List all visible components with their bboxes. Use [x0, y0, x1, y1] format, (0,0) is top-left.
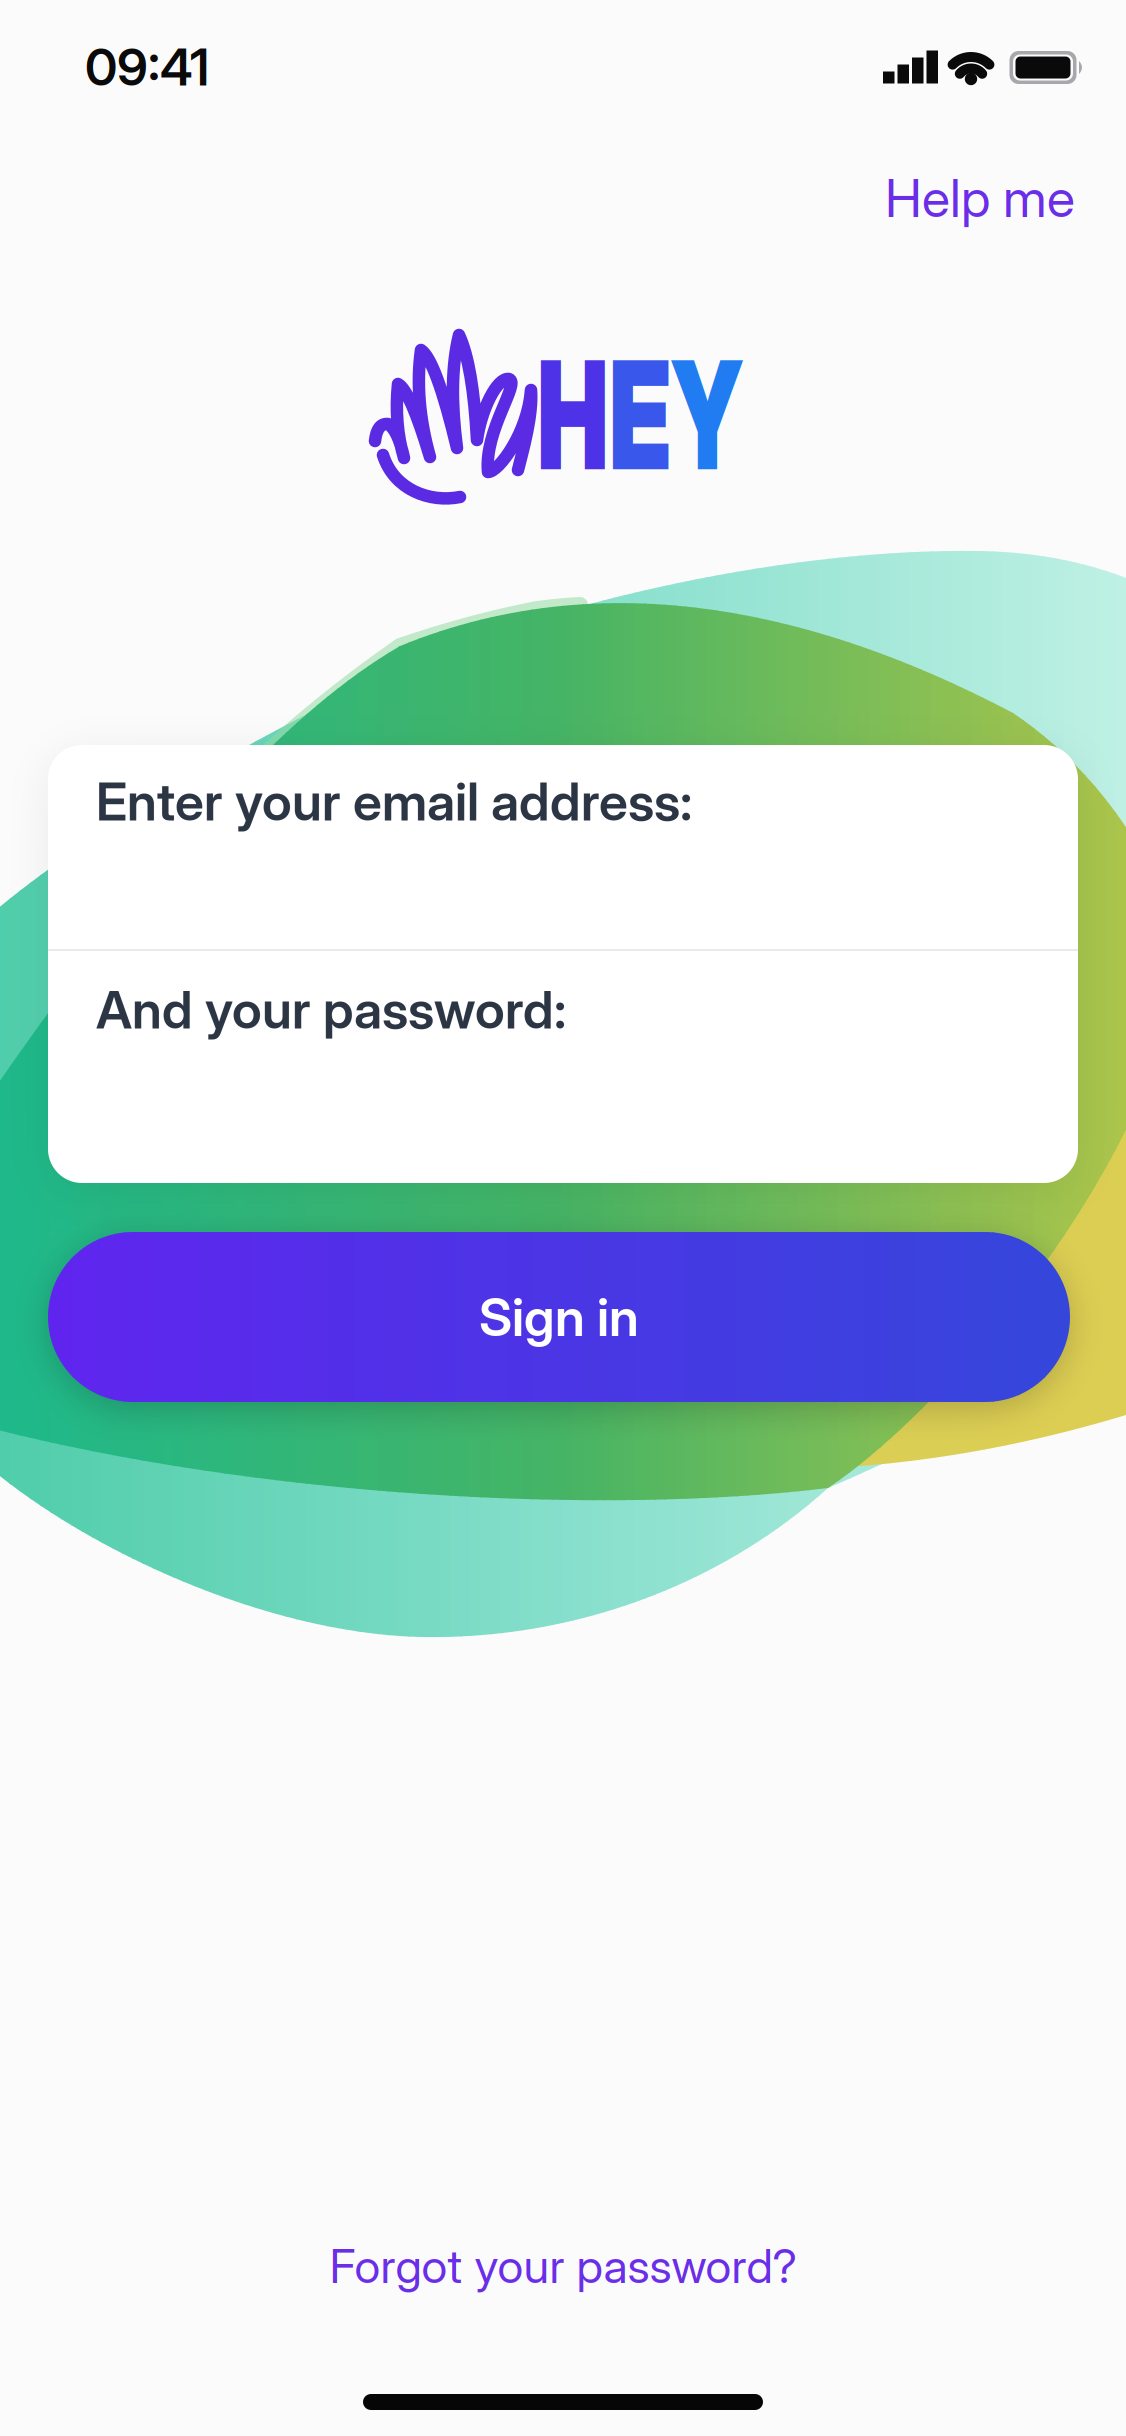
- staticText: E: [593, 327, 687, 503]
- staticText: 09:41: [85, 37, 209, 97]
- button[interactable]: Enter your email address:: [48, 745, 1078, 949]
- staticText: Enter your email address:: [96, 771, 692, 832]
- staticText: Help me: [885, 167, 1075, 229]
- button[interactable]: Sign in: [48, 1232, 1070, 1402]
- staticText: And your password:: [96, 979, 566, 1040]
- staticText: H: [484, 327, 593, 503]
- staticText: Sign in: [479, 1286, 639, 1348]
- staticText: Y: [687, 327, 796, 503]
- button[interactable]: And your password:: [48, 951, 1078, 1183]
- button[interactable]: Help me: [885, 167, 1075, 229]
- staticText: Forgot your password?: [329, 2238, 796, 2294]
- button[interactable]: Forgot your password?: [329, 2238, 796, 2294]
